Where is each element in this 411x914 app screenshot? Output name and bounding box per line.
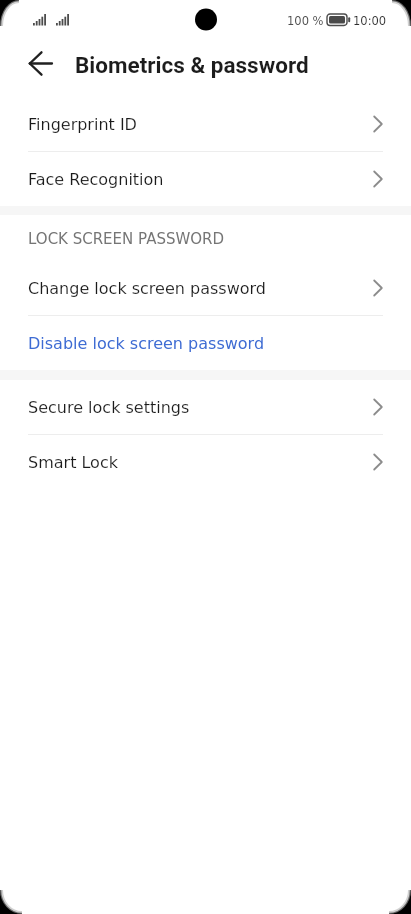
staticText: Disable lock screen password [28, 334, 265, 353]
button[interactable]: Change lock screen password [0, 261, 411, 315]
staticText: LOCK SCREEN PASSWORD [28, 230, 225, 247]
staticText: 100 % [287, 14, 324, 27]
staticText: Biometrics & password [75, 52, 309, 78]
button[interactable]: Face Recognition [0, 152, 411, 206]
button[interactable] [20, 52, 60, 76]
staticText: Secure lock settings [28, 398, 190, 417]
staticText: Fingerprint ID [28, 115, 137, 134]
staticText: Smart Lock [28, 453, 118, 472]
button[interactable]: Fingerprint ID [0, 97, 411, 151]
staticText: Change lock screen password [28, 279, 266, 298]
button[interactable]: Smart Lock [0, 435, 411, 489]
staticText: 10:00 [353, 14, 387, 27]
button[interactable]: Disable lock screen password [0, 316, 411, 370]
staticText: Face Recognition [28, 170, 164, 189]
button[interactable]: Secure lock settings [0, 380, 411, 434]
